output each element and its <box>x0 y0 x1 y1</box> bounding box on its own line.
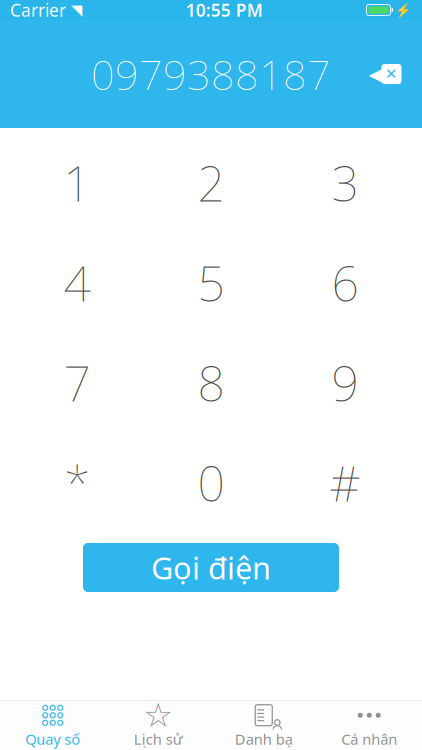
staticText: ⚡ <box>395 2 412 18</box>
button[interactable]: 2 <box>144 133 278 233</box>
staticText: 4 <box>63 251 90 315</box>
staticText: Danh bạ <box>235 729 293 749</box>
staticText: 5 <box>197 251 224 315</box>
button[interactable]: * <box>10 433 144 533</box>
button[interactable]: ☆ <box>105 698 211 750</box>
button[interactable]: 3 <box>278 133 412 233</box>
button[interactable]: 1 <box>10 133 144 233</box>
button[interactable]: 5 <box>144 233 278 333</box>
staticText: 0979388187 <box>91 47 331 101</box>
button[interactable]: Xoá <box>372 63 402 85</box>
staticText: ☆ <box>143 696 173 734</box>
staticText <box>66 0 71 21</box>
staticText: # <box>329 451 360 515</box>
button[interactable]: # <box>278 433 412 533</box>
button[interactable]: 9 <box>278 333 412 433</box>
button[interactable]: 8 <box>144 333 278 433</box>
staticText: 6 <box>331 251 358 315</box>
staticText: 10:55 PM <box>186 0 263 21</box>
staticText: 2 <box>197 151 224 215</box>
button[interactable]: Cá nhân <box>316 698 422 750</box>
button[interactable]: 0 <box>144 433 278 533</box>
button[interactable]: Danh bạ <box>211 698 316 750</box>
button[interactable]: 6 <box>278 233 412 333</box>
button[interactable]: Gọi điện <box>83 543 339 592</box>
staticText: 0 <box>197 451 224 515</box>
staticText: 9 <box>331 351 358 415</box>
staticText: Quay số <box>25 729 80 749</box>
button[interactable]: 7 <box>10 333 144 433</box>
staticText: ✕ <box>385 66 397 82</box>
button[interactable]: 4 <box>10 233 144 333</box>
staticText: 1 <box>63 151 90 215</box>
staticText: ◥ <box>71 2 82 18</box>
button[interactable]: Quay số <box>0 698 105 750</box>
staticText: * <box>64 451 90 515</box>
staticText: Cá nhân <box>341 729 397 749</box>
staticText: Gọi điện <box>151 547 271 588</box>
staticText: ◀ <box>368 61 385 87</box>
staticText: 8 <box>197 351 224 415</box>
staticText: Carrier <box>10 0 66 21</box>
staticText: Lịch sử <box>134 729 183 749</box>
staticText: 7 <box>63 351 90 415</box>
staticText: 3 <box>331 151 358 215</box>
